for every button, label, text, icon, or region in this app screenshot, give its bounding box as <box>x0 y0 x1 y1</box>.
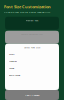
staticText: Apply Changes <box>24 93 39 97</box>
staticText: Medium <box>9 60 17 63</box>
button[interactable]: Extra Large <box>5 72 59 79</box>
button[interactable]: Apply Changes <box>5 90 59 100</box>
staticText: Small <box>9 53 15 56</box>
button[interactable]: Medium <box>5 58 59 65</box>
staticText: Extra Large <box>9 74 20 77</box>
button[interactable]: Large <box>5 65 59 72</box>
staticText: Preview Text <box>25 19 38 22</box>
staticText: Select Font Size <box>24 46 40 49</box>
staticText: Change text size for better readability <box>4 10 50 14</box>
staticText: Font Size Customization <box>4 4 51 9</box>
button[interactable]: Small <box>5 51 59 58</box>
staticText: Large <box>9 67 14 70</box>
staticText: Sample paragraph text <box>21 33 43 36</box>
